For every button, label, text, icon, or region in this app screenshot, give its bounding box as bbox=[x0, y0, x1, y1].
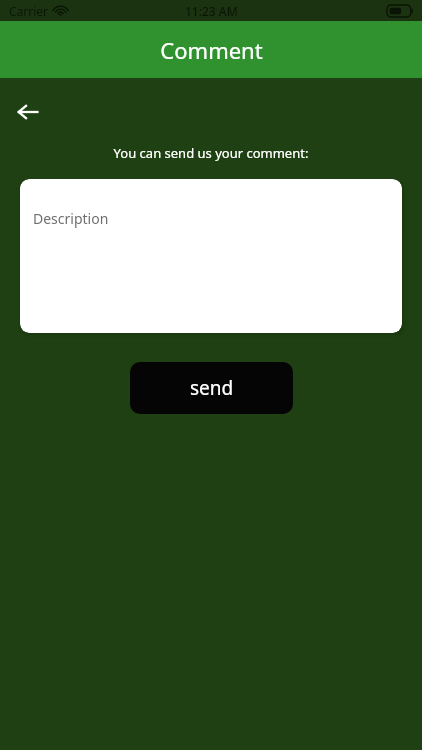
staticText: Carrier bbox=[9, 3, 49, 19]
staticText: Comment bbox=[160, 35, 263, 65]
staticText: send bbox=[190, 375, 234, 401]
staticText: 11:23 AM bbox=[185, 3, 238, 19]
staticText: You can send us your comment: bbox=[0, 144, 422, 162]
button[interactable]: send bbox=[130, 362, 293, 414]
button[interactable]: Description bbox=[20, 179, 402, 333]
button[interactable]: Back bbox=[8, 92, 48, 132]
staticText: Description bbox=[33, 209, 109, 228]
